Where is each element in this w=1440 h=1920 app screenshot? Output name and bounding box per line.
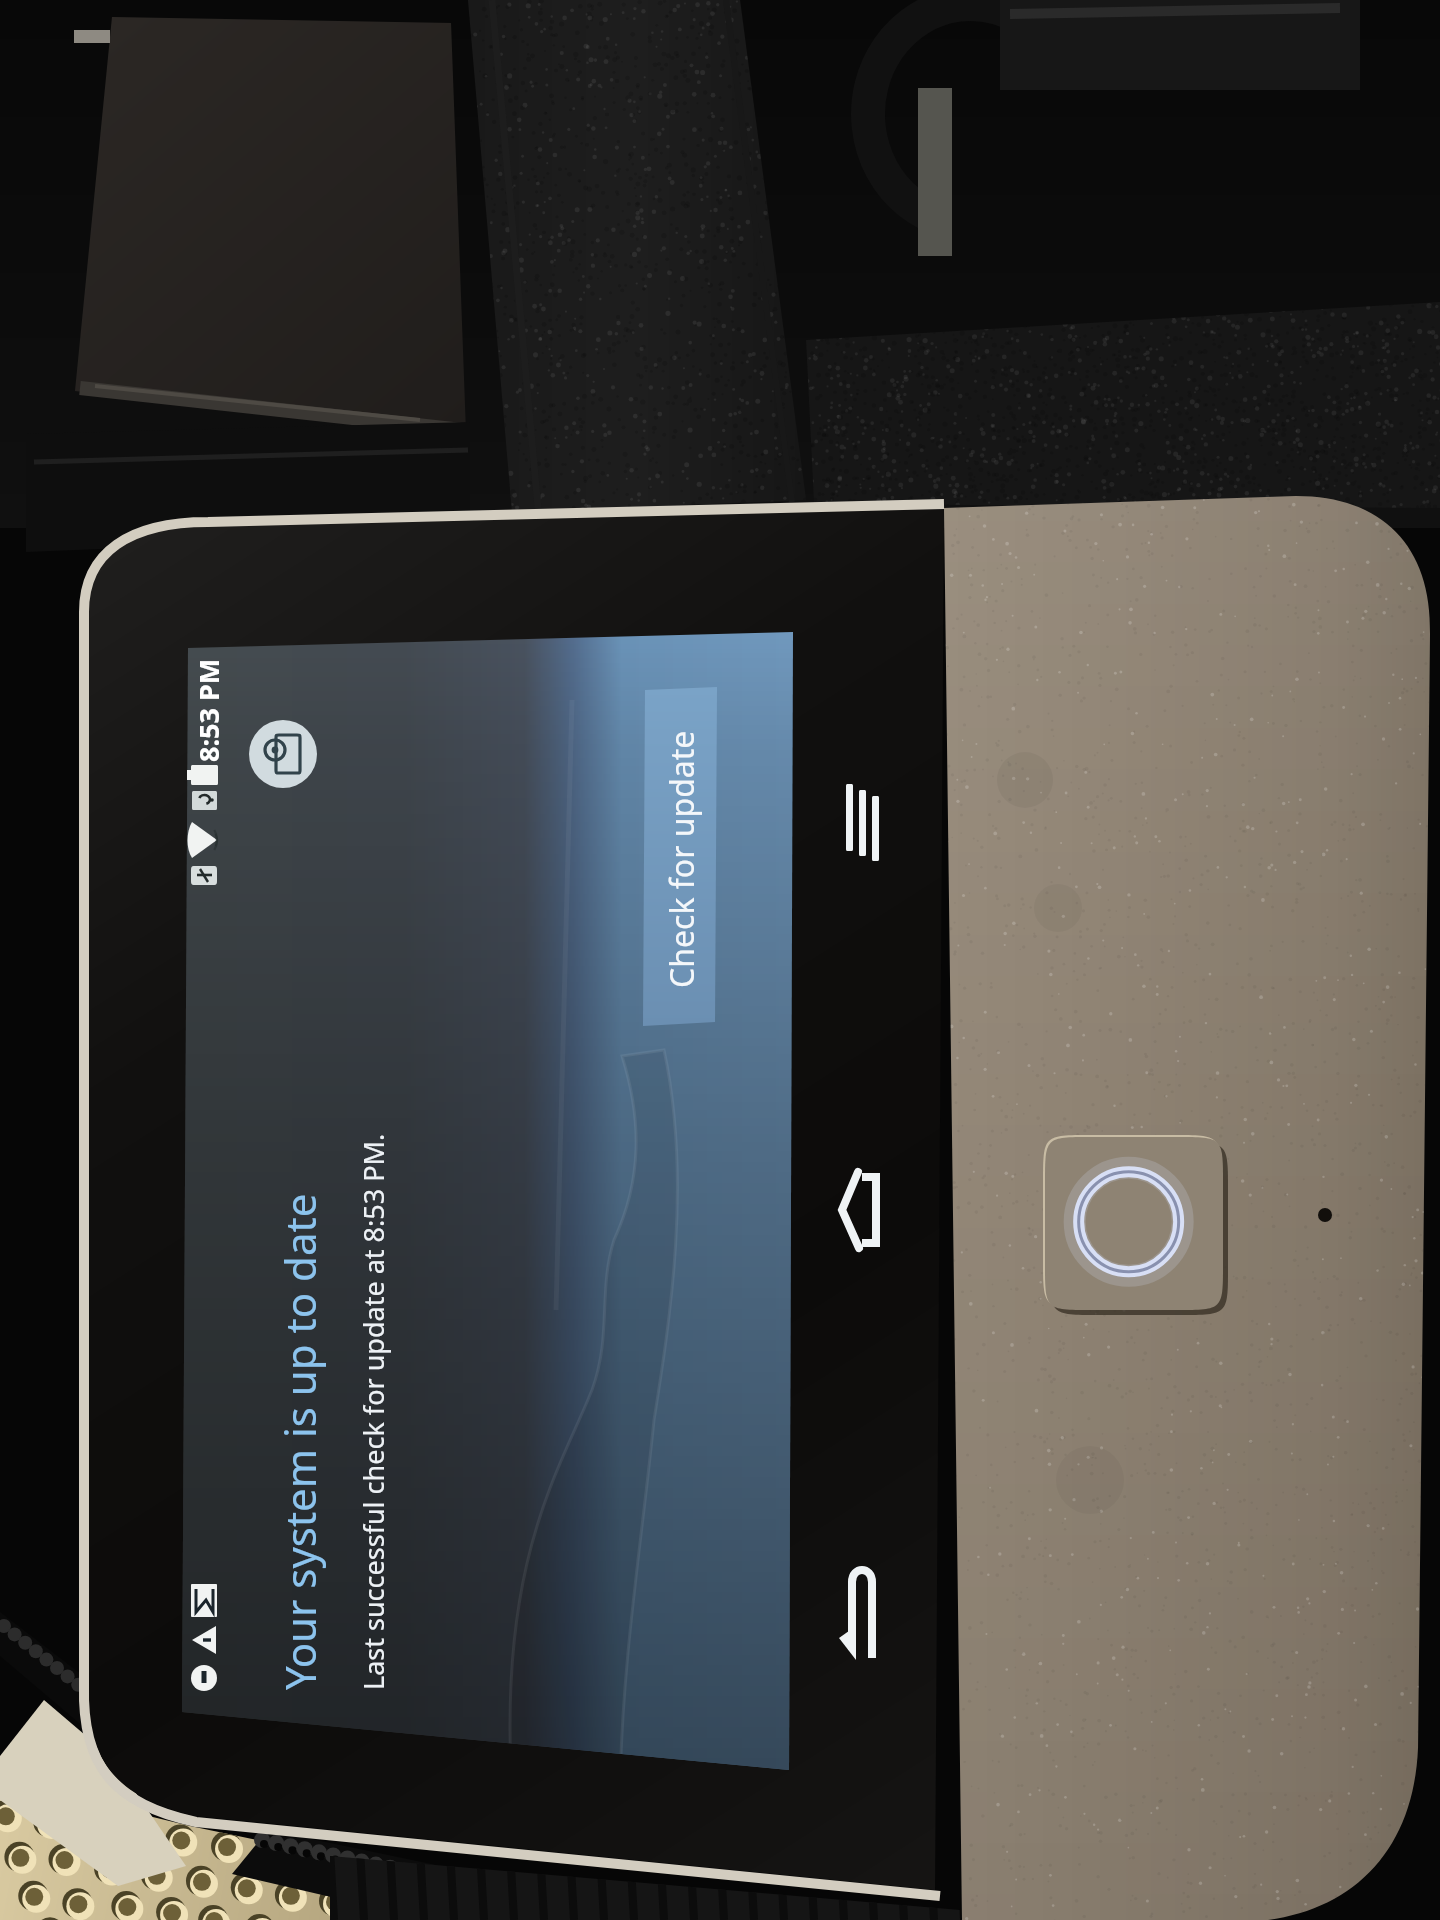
- button[interactable]: Photo of a handheld device showing Your …: [0, 0, 1440, 1920]
